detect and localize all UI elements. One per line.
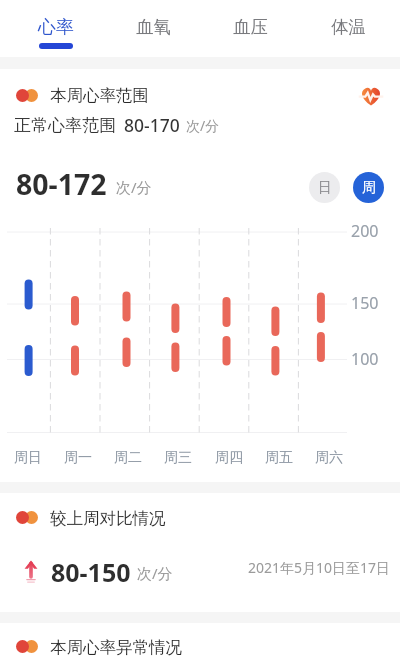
button[interactable]: 周六 — [309, 449, 349, 467]
staticText: 150 — [351, 292, 379, 314]
button[interactable]: 周五 — [259, 449, 299, 467]
staticText: 正常心率范围 — [14, 115, 116, 136]
staticText: 2021年5月10日至17日 — [248, 558, 391, 577]
staticText: 周四 — [215, 449, 243, 467]
button[interactable]: 血氧 — [121, 0, 185, 56]
staticText: 80-172 — [16, 165, 107, 204]
staticText: 周六 — [315, 449, 343, 467]
staticText: 次/分 — [116, 177, 152, 197]
staticText: 血压 — [233, 16, 268, 38]
button[interactable]: 体温 — [316, 0, 380, 56]
staticText: 较上周对比情况 — [50, 508, 166, 529]
staticText: 80-170 — [124, 113, 180, 137]
staticText: 周日 — [14, 449, 42, 467]
button[interactable]: 血压 — [218, 0, 282, 56]
staticText: 80-150 — [51, 555, 131, 589]
staticText: 本周心率范围 — [50, 85, 149, 106]
staticText: 周三 — [164, 449, 192, 467]
staticText: 周五 — [265, 449, 293, 467]
button[interactable]: 周一 — [58, 449, 98, 467]
button[interactable]: 周 — [353, 172, 384, 203]
staticText: 体温 — [331, 16, 366, 38]
button[interactable]: 周二 — [108, 449, 148, 467]
staticText: 周二 — [114, 449, 142, 467]
staticText: 200 — [351, 220, 379, 242]
staticText: 次/分 — [186, 116, 220, 135]
staticText: 心率 — [38, 16, 74, 39]
button[interactable]: 周四 — [209, 449, 249, 467]
button[interactable]: 周日 — [8, 449, 48, 467]
button[interactable]: 心率 — [24, 0, 88, 56]
staticText: 日 — [318, 179, 332, 197]
staticText: 血氧 — [136, 16, 171, 38]
button[interactable]: 周三 — [158, 449, 198, 467]
staticText: 100 — [351, 348, 379, 370]
staticText: 周一 — [64, 449, 92, 467]
staticText: 周 — [362, 179, 376, 197]
staticText: 次/分 — [137, 563, 173, 583]
staticText: 本周心率异常情况 — [50, 637, 182, 658]
other: Heart rate — [360, 86, 382, 106]
button[interactable]: 日 — [309, 172, 340, 203]
